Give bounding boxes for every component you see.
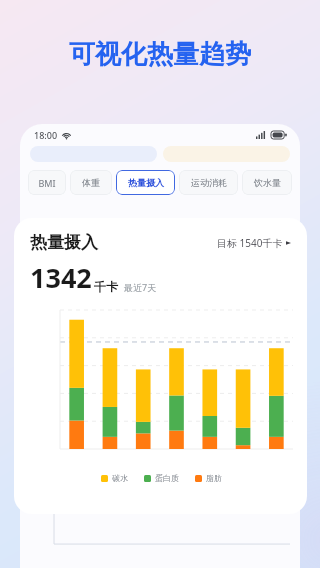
staticText: 饮水量 (254, 177, 281, 188)
staticText: 千卡 (94, 279, 118, 294)
staticText: 目标 1540千卡 (217, 236, 283, 250)
staticText: 体重 (82, 177, 100, 188)
button[interactable]: 热量摄入 (116, 170, 175, 195)
staticText: 蛋白质 (155, 473, 179, 483)
staticText: 热量摄入 (30, 232, 98, 253)
staticText: 可视化热量趋势 (69, 38, 251, 71)
button[interactable]: 目标 1540千卡 (215, 234, 293, 252)
staticText: 1342 (30, 259, 92, 296)
staticText: 脂肪 (206, 473, 222, 483)
staticText: BMI (38, 177, 56, 189)
staticText: 最近7天 (124, 281, 157, 293)
button[interactable]: 饮水量 (242, 170, 292, 195)
button[interactable]: 运动消耗 (179, 170, 238, 195)
staticText: 运动消耗 (191, 177, 227, 188)
button[interactable]: BMI (28, 170, 66, 195)
button[interactable]: 体重 (70, 170, 112, 195)
staticText: 热量摄入 (128, 177, 164, 188)
staticText: 18:00 (34, 129, 58, 141)
staticText: 碳水 (112, 473, 128, 483)
